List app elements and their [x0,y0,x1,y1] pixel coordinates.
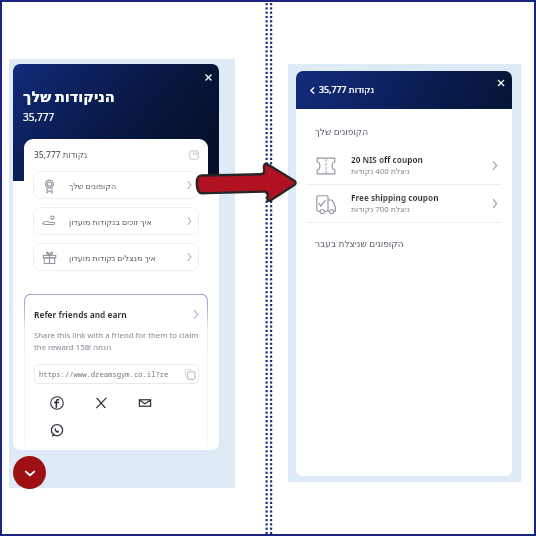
button[interactable]: X [93,395,109,411]
button[interactable]: Refer friends and earn [34,309,199,320]
staticText: הקופונים שלך [69,180,117,191]
staticText: Free shipping coupon [351,192,439,203]
button[interactable]: WhatsApp [49,423,65,439]
staticText: Share this link with a friend for them t… [34,330,199,352]
button[interactable]: Close [202,71,215,84]
staticText: נקודות 35,777 [319,84,374,96]
button[interactable]: Free shipping coupon [307,185,501,222]
staticText: 20 NIS off coupon [351,154,423,165]
button[interactable]: Facebook [49,395,65,411]
button[interactable]: הקופונים שלך [33,171,199,199]
staticText: איך זוכים בנקודות מועדון [69,216,152,227]
staticText: 35,777 [23,110,55,124]
staticText: נקודות 35,777 [34,149,88,161]
button[interactable]: איך זוכים בנקודות מועדון [33,207,199,235]
button[interactable]: Scroll down [13,456,46,489]
button[interactable]: איך מנצלים נקודות מועדון [33,243,199,271]
staticText: הקופונים שלך [315,125,369,137]
staticText: הקופונים שניצלת בעבר [315,237,404,249]
button[interactable]: 20 NIS off coupon [307,147,501,184]
button[interactable]: Back [307,85,318,96]
staticText: הניקודות שלך [23,86,115,106]
staticText: ניצלת 700 נקודות [351,204,410,215]
button[interactable]: https://www.dreamsgym.co.il?re [34,364,199,384]
staticText: https://www.dreamsgym.co.il?re [39,369,169,379]
staticText: ניצלת 400 נקודות [351,166,410,177]
button[interactable]: Close [495,77,507,89]
staticText: Refer friends and earn [34,309,127,320]
button[interactable]: Email [137,395,153,411]
staticText: איך מנצלים נקודות מועדון [69,252,156,263]
other: Card [189,150,199,160]
